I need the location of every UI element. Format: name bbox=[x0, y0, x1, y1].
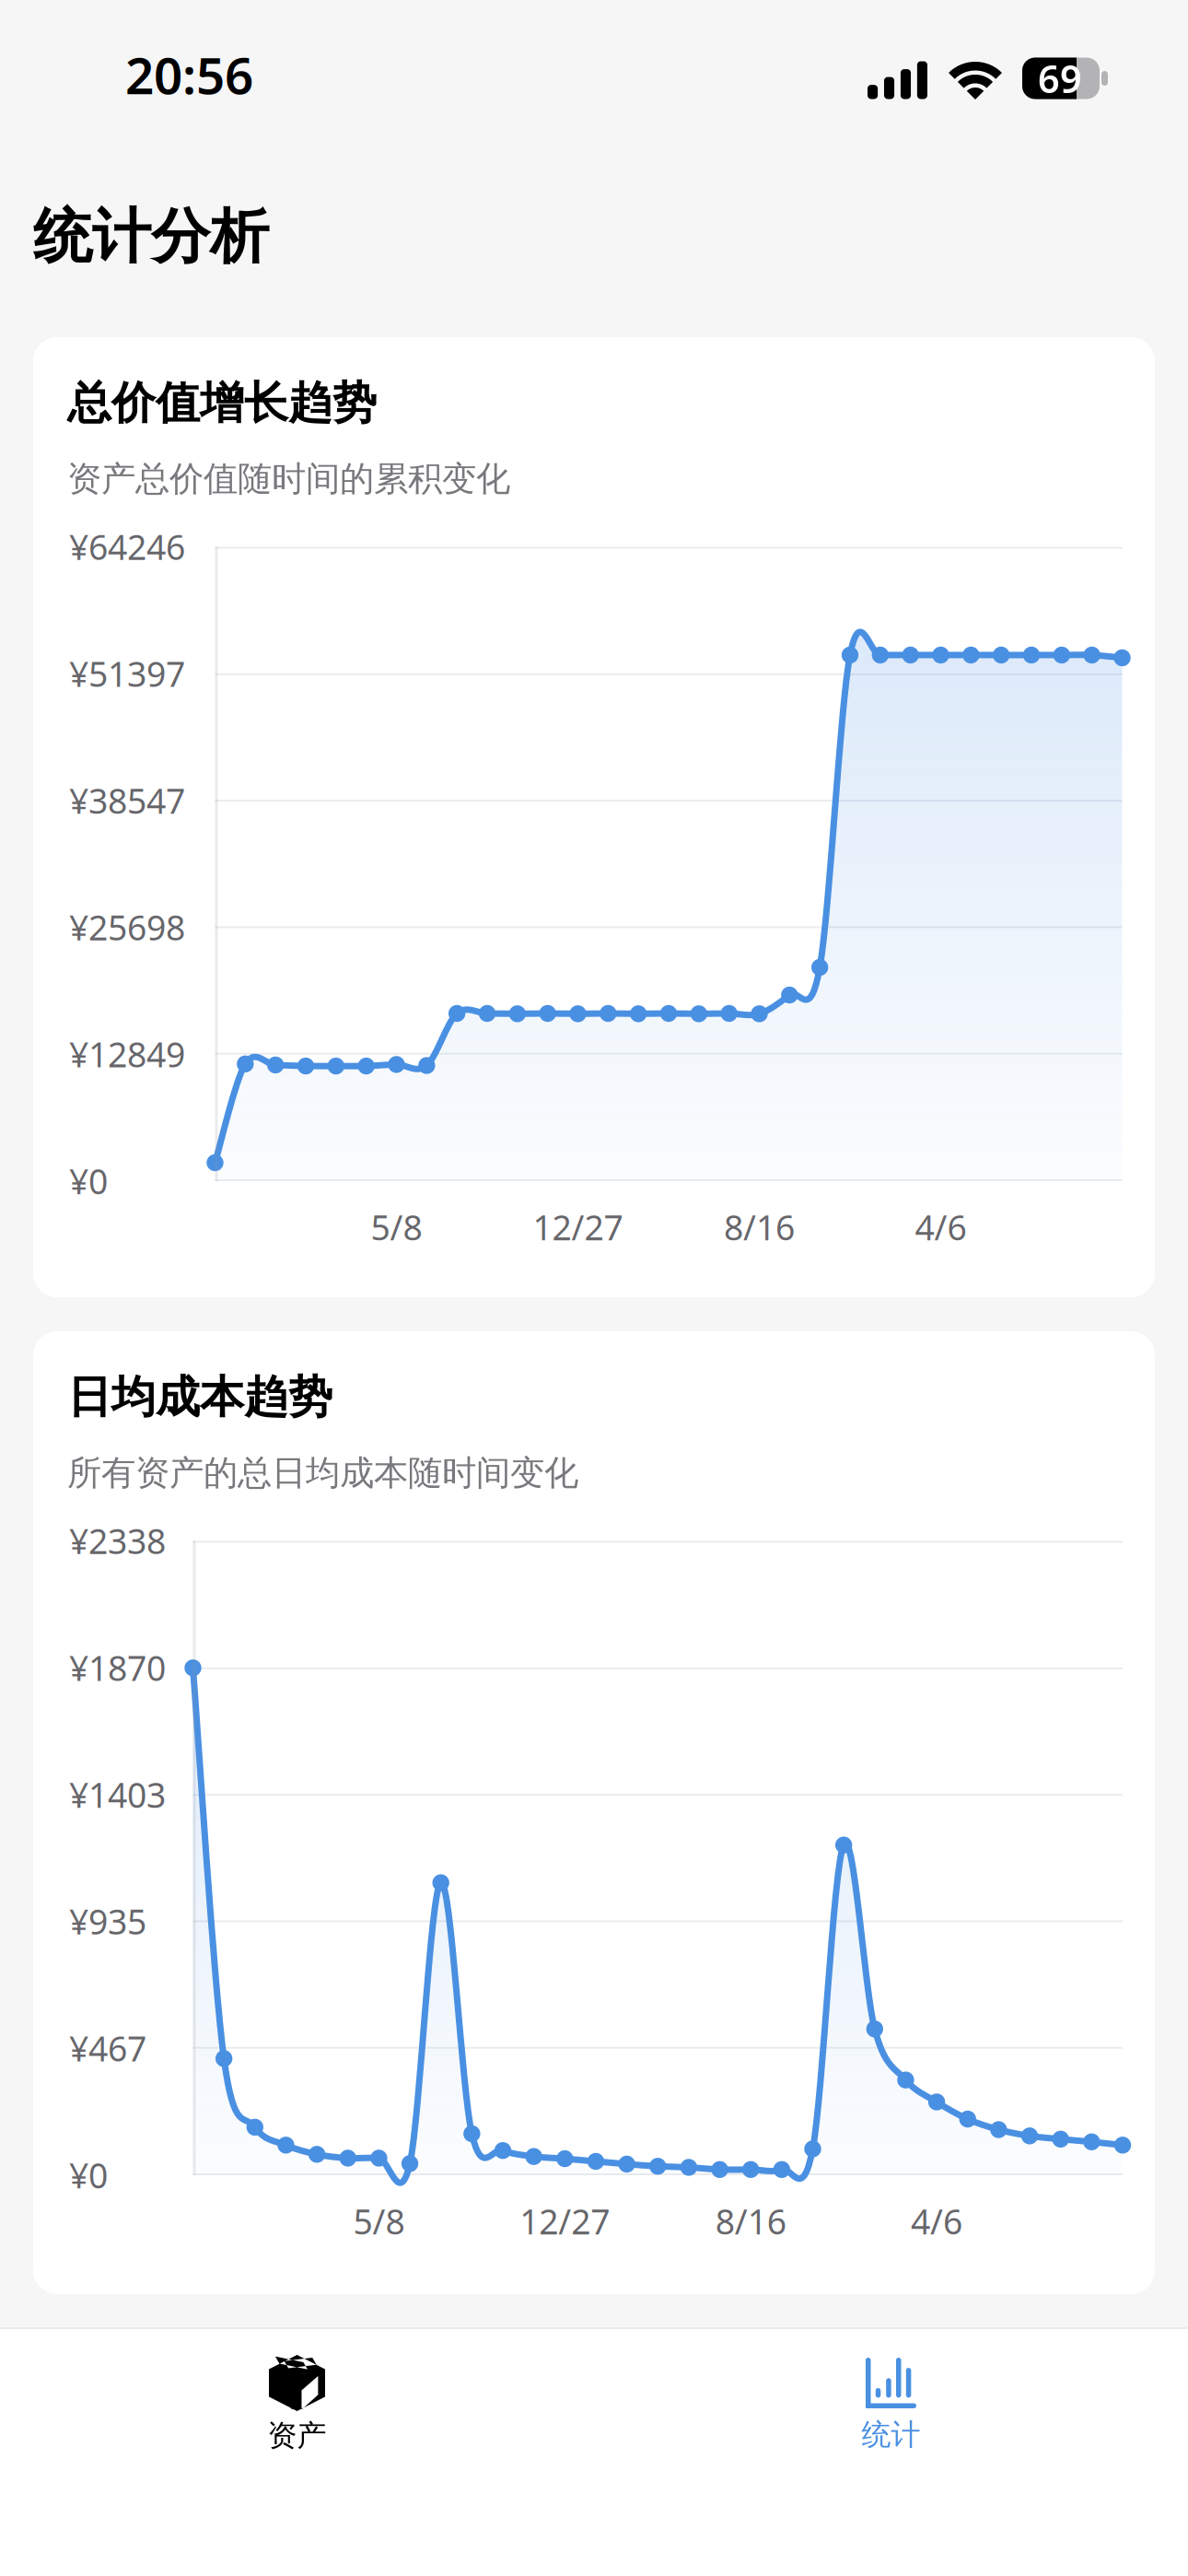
staticText: 资产总价值随时间的累积变化 bbox=[67, 458, 510, 500]
staticText: 资产 bbox=[268, 2418, 326, 2454]
button[interactable]: 资产 bbox=[0, 2335, 594, 2472]
staticText: 12/27 bbox=[533, 1204, 623, 1250]
staticText: 所有资产的总日均成本随时间变化 bbox=[67, 1452, 578, 1494]
staticText: 4/6 bbox=[911, 2198, 962, 2244]
staticText: ¥0 bbox=[69, 2152, 108, 2198]
staticText: ¥1403 bbox=[69, 1772, 166, 1817]
staticText: 统计 bbox=[862, 2417, 920, 2453]
staticText: 69 bbox=[1038, 53, 1082, 104]
staticText: 5/8 bbox=[353, 2198, 405, 2244]
staticText: ¥25698 bbox=[69, 904, 185, 950]
staticText: 统计分析 bbox=[33, 201, 269, 273]
staticText: 日均成本趋势 bbox=[67, 1370, 332, 1424]
staticText: ¥64246 bbox=[69, 524, 185, 569]
staticText: 4/6 bbox=[915, 1204, 967, 1250]
staticText: 12/27 bbox=[520, 2198, 610, 2244]
staticText: ¥2338 bbox=[69, 1518, 166, 1564]
button[interactable]: 统计 bbox=[594, 2336, 1188, 2471]
staticText: ¥51397 bbox=[69, 651, 185, 696]
staticText: 8/16 bbox=[715, 2198, 786, 2244]
staticText: ¥0 bbox=[69, 1158, 108, 1204]
staticText: 总价值增长趋势 bbox=[67, 376, 377, 430]
staticText: 5/8 bbox=[371, 1204, 422, 1250]
staticText: ¥467 bbox=[69, 2025, 146, 2071]
staticText: ¥1870 bbox=[69, 1645, 166, 1690]
staticText: ¥38547 bbox=[69, 777, 185, 823]
staticText: ¥935 bbox=[69, 1898, 146, 1944]
staticText: 8/16 bbox=[724, 1204, 795, 1250]
staticText: ¥12849 bbox=[69, 1031, 185, 1077]
staticText: 20:56 bbox=[125, 41, 253, 108]
